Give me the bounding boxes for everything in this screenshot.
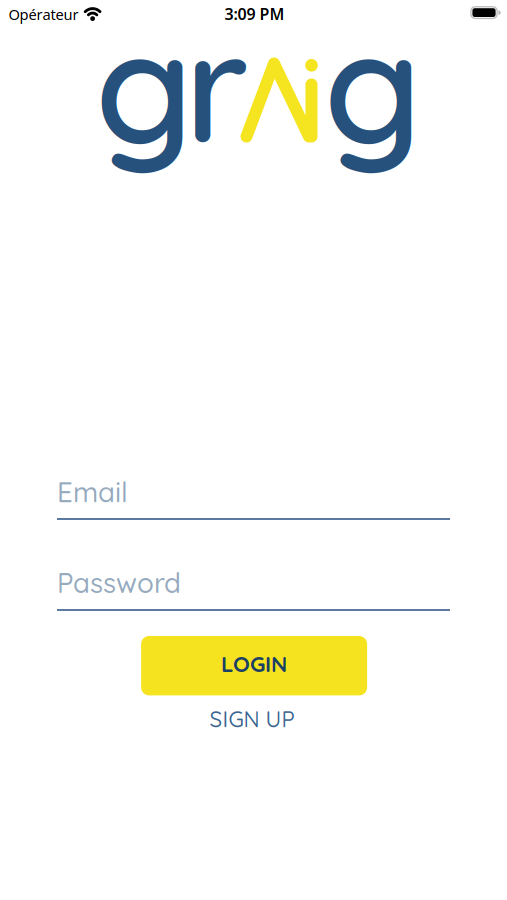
staticText: Password <box>57 565 181 600</box>
staticText: r <box>184 0 249 181</box>
staticText: g <box>324 0 422 181</box>
button[interactable]: LOGIN <box>141 636 367 695</box>
button[interactable]: SIGN UP <box>199 699 304 739</box>
staticText: Opérateur <box>8 5 78 24</box>
staticText: LOGIN <box>221 650 287 677</box>
staticText: SIGN UP <box>209 705 294 733</box>
staticText: Email <box>57 475 128 509</box>
staticText: g <box>95 0 193 181</box>
button[interactable]: Password <box>0 542 507 627</box>
staticText: 3:09 PM <box>224 3 284 24</box>
button[interactable]: Email <box>0 452 507 537</box>
